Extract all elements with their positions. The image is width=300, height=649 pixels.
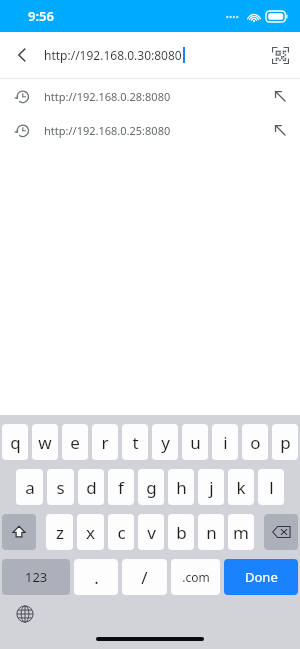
button[interactable]: i — [212, 424, 238, 460]
button[interactable]: s — [47, 469, 74, 505]
staticText: b — [176, 521, 187, 544]
staticText: i — [223, 431, 228, 454]
staticText: Done — [245, 568, 278, 586]
button[interactable]: y — [152, 424, 178, 460]
staticText: 9:56 — [28, 7, 54, 25]
staticText: d — [86, 476, 97, 499]
button[interactable]: m — [228, 514, 254, 550]
staticText: w — [38, 431, 52, 454]
button[interactable]: .com — [171, 559, 220, 595]
staticText: l — [269, 476, 274, 499]
staticText: http://192.168.0.30:8080 — [44, 47, 182, 63]
staticText: u — [190, 431, 201, 454]
button[interactable]: http://192.168.0.25:8080 — [0, 113, 300, 147]
button[interactable]: http://192.168.0.28:8080 — [0, 79, 300, 113]
staticText: / — [141, 566, 148, 589]
staticText: e — [70, 431, 80, 454]
button[interactable]: Backspace — [264, 514, 298, 550]
button[interactable]: Back — [0, 32, 44, 78]
button[interactable]: / — [122, 559, 167, 595]
staticText: g — [146, 476, 157, 499]
staticText: c — [117, 521, 126, 544]
button[interactable]: h — [168, 469, 194, 505]
staticText: p — [280, 431, 291, 454]
staticText: o — [250, 431, 261, 454]
button[interactable]: u — [182, 424, 208, 460]
button[interactable]: v — [138, 514, 164, 550]
button[interactable]: g — [138, 469, 164, 505]
button[interactable]: d — [78, 469, 104, 505]
staticText: m — [233, 521, 249, 544]
button[interactable]: 123 — [2, 559, 70, 595]
staticText: http://192.168.0.25:8080 — [44, 123, 260, 138]
button[interactable]: j — [198, 469, 224, 505]
staticText: z — [56, 521, 64, 544]
staticText: http://192.168.0.28:8080 — [44, 89, 260, 104]
staticText: t — [132, 431, 139, 454]
button[interactable]: Change keyboard language — [12, 601, 38, 627]
staticText: j — [209, 476, 214, 499]
button[interactable]: k — [228, 469, 254, 505]
button[interactable]: r — [92, 424, 118, 460]
button[interactable]: . — [74, 559, 118, 595]
button[interactable]: w — [32, 424, 58, 460]
button[interactable]: Done — [224, 559, 298, 595]
staticText: k — [236, 476, 246, 499]
staticText: 123 — [25, 568, 48, 586]
staticText: q — [10, 431, 21, 454]
staticText: s — [56, 476, 65, 499]
button[interactable]: Shift — [2, 514, 36, 550]
staticText: x — [86, 521, 95, 544]
staticText: n — [206, 521, 217, 544]
button[interactable]: b — [168, 514, 194, 550]
staticText: r — [101, 431, 109, 454]
staticText: a — [25, 476, 35, 499]
button[interactable]: c — [108, 514, 134, 550]
button[interactable]: q — [2, 424, 28, 460]
button[interactable]: a — [16, 469, 43, 505]
button[interactable]: f — [108, 469, 134, 505]
button[interactable]: l — [258, 469, 284, 505]
other: Use suggestion — [260, 89, 300, 103]
button[interactable]: z — [46, 514, 73, 550]
other: Use suggestion — [260, 123, 300, 137]
staticText: .com — [182, 569, 210, 585]
button[interactable]: x — [77, 514, 104, 550]
button[interactable]: p — [272, 424, 298, 460]
button[interactable]: e — [62, 424, 88, 460]
button[interactable]: o — [242, 424, 268, 460]
staticText: f — [118, 476, 124, 499]
button[interactable]: Scan QR code — [260, 32, 300, 78]
staticText: h — [176, 476, 187, 499]
staticText: . — [94, 566, 99, 589]
staticText: y — [161, 431, 170, 454]
staticText: v — [147, 521, 156, 544]
button[interactable]: t — [122, 424, 148, 460]
button[interactable]: n — [198, 514, 224, 550]
